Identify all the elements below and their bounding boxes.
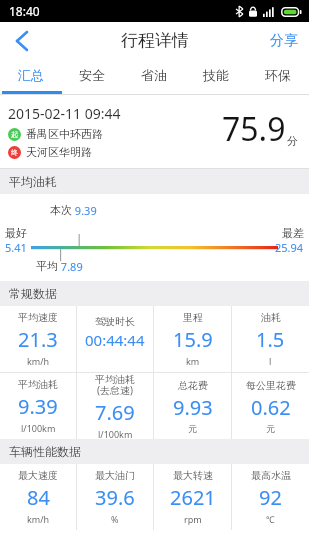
staticText: 平均油耗	[9, 174, 57, 189]
staticText: %	[111, 513, 119, 525]
staticText: 最大速度	[18, 469, 58, 482]
staticText: 00:44:44	[85, 330, 145, 350]
button[interactable]: 分享	[259, 22, 309, 59]
staticText: 最大油门	[95, 469, 135, 482]
staticText: 9.39	[18, 393, 58, 420]
staticText: 分	[287, 134, 298, 148]
button[interactable]: 最高水温	[232, 464, 309, 530]
button[interactable]: 最大速度	[0, 464, 76, 530]
staticText: 油耗	[261, 311, 281, 324]
staticText: 分享	[270, 32, 298, 50]
staticText: l/100km	[21, 422, 56, 434]
staticText: 本次	[50, 203, 72, 217]
staticText: 每公里花费	[246, 379, 296, 392]
button[interactable]: 里程	[154, 306, 231, 372]
staticText: 行程详情	[121, 30, 189, 51]
staticText: 驾驶时长	[95, 315, 135, 328]
staticText: 18:40	[9, 3, 40, 19]
button[interactable]: 环保	[247, 59, 309, 91]
staticText: 75.9	[222, 107, 286, 151]
staticText: 平均油耗 (去怠速)	[95, 373, 135, 397]
button[interactable]: 每公里花费	[232, 373, 309, 439]
staticText: 2015-02-11 09:44	[8, 104, 121, 123]
staticText: 5.41	[5, 240, 27, 255]
staticText: 起	[11, 130, 18, 139]
staticText: 7.69	[95, 399, 135, 426]
button[interactable]: 安全	[61, 59, 123, 91]
button[interactable]: 最大油门	[77, 464, 153, 530]
button[interactable]: 平均油耗 (去怠速)	[77, 373, 153, 439]
button[interactable]: 技能	[185, 59, 247, 91]
staticText: 省油	[141, 67, 167, 83]
button[interactable]: Back	[0, 22, 44, 59]
staticText: l/100km	[98, 428, 133, 439]
staticText: 车辆性能数据	[9, 444, 81, 459]
button[interactable]: 油耗	[232, 306, 309, 372]
button[interactable]: 汇总	[0, 59, 61, 91]
staticText: 9.93	[173, 394, 213, 421]
staticText: l	[269, 355, 272, 367]
staticText: 安全	[79, 67, 105, 83]
staticText: 天河区华明路	[26, 145, 92, 159]
staticText: 总花费	[178, 379, 208, 392]
staticText: 21.3	[18, 326, 58, 353]
staticText: 1.5	[256, 326, 285, 353]
staticText: 元	[266, 423, 275, 434]
staticText: 92	[259, 484, 282, 511]
staticText: 最高水温	[251, 469, 291, 482]
button[interactable]: 最大转速	[154, 464, 231, 530]
staticText: 9.39	[72, 203, 97, 218]
staticText: 2621	[170, 484, 216, 511]
button[interactable]: 平均油耗	[0, 373, 76, 439]
staticText: 25.94	[275, 240, 304, 255]
staticText: 39.6	[95, 484, 135, 511]
staticText: km/h	[27, 513, 50, 525]
staticText: 平均速度	[18, 311, 58, 324]
staticText: 元	[188, 423, 197, 434]
staticText: 最大转速	[173, 469, 213, 482]
staticText: 汇总	[18, 67, 44, 83]
staticText: 0.62	[251, 394, 291, 421]
button[interactable]: 省油	[123, 59, 185, 91]
staticText: ℃	[266, 513, 275, 525]
staticText: 84	[27, 484, 50, 511]
staticText: 7.89	[58, 259, 83, 274]
staticText: 里程	[183, 311, 203, 324]
staticText: 最差	[282, 226, 304, 240]
button[interactable]: 平均速度	[0, 306, 76, 372]
staticText: 番禺区中环西路	[26, 127, 103, 141]
staticText: 最好	[5, 226, 27, 240]
button[interactable]: 总花费	[154, 373, 231, 439]
staticText: km	[186, 355, 200, 367]
staticText: 平均	[36, 259, 58, 273]
staticText: 15.9	[173, 326, 213, 353]
staticText: 技能	[203, 67, 229, 83]
staticText: 平均油耗	[18, 378, 58, 391]
staticText: 环保	[265, 67, 291, 83]
staticText: 常规数据	[9, 286, 57, 301]
staticText: 终	[11, 148, 18, 157]
staticText: rpm	[184, 513, 202, 525]
button[interactable]: 驾驶时长	[77, 306, 153, 372]
staticText: km/h	[27, 355, 50, 367]
